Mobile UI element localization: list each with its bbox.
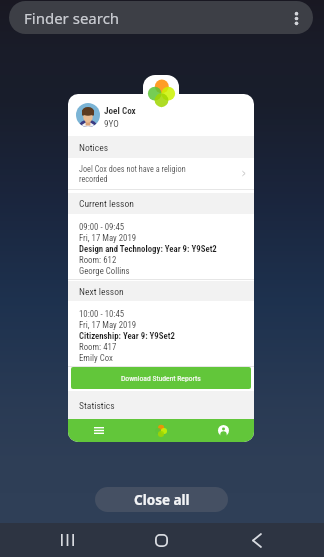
- staticText: 10:00 - 10:45: [79, 309, 125, 319]
- staticText: Next lesson: [79, 286, 124, 297]
- staticText: Joel Cox does not have a religion record…: [79, 164, 197, 184]
- button[interactable]: Home: [130, 419, 192, 442]
- staticText: Finder search: [24, 8, 120, 28]
- staticText: Room: 612: [79, 255, 117, 265]
- staticText: Close all: [134, 491, 190, 509]
- staticText: Download Student Reports: [121, 374, 201, 383]
- button[interactable]: Finder search: [9, 1, 313, 34]
- staticText: George Collins: [79, 266, 130, 276]
- staticText: Notices: [79, 142, 109, 153]
- button[interactable]: Recents: [20, 523, 114, 557]
- staticText: 9YO: [104, 118, 119, 129]
- staticText: Fri, 17 May 2019: [79, 320, 137, 330]
- button[interactable]: Close all: [95, 487, 228, 512]
- staticText: Fri, 17 May 2019: [79, 233, 137, 243]
- button[interactable]: Back: [209, 523, 304, 557]
- button[interactable]: Joel Cox does not have a religion record…: [68, 158, 254, 189]
- button[interactable]: Statistics: [68, 391, 254, 419]
- staticText: Design and Technology: Year 9: Y9Set2: [79, 244, 217, 254]
- staticText: Emily Cox: [79, 353, 113, 363]
- staticText: Statistics: [79, 400, 115, 411]
- button[interactable]: Joel Cox: [68, 94, 254, 442]
- button[interactable]: Home: [114, 523, 209, 557]
- staticText: 09:00 - 09:45: [79, 222, 125, 232]
- other: App icon: [143, 75, 179, 111]
- staticText: Citizenship: Year 9: Y9Set2: [79, 331, 175, 341]
- staticText: Current lesson: [79, 198, 134, 209]
- staticText: Joel Cox: [104, 105, 136, 116]
- button[interactable]: More options: [285, 7, 307, 29]
- button[interactable]: Menu: [68, 419, 130, 442]
- button[interactable]: Profile: [192, 419, 254, 442]
- staticText: Room: 417: [79, 342, 117, 352]
- button[interactable]: Download Student Reports: [71, 367, 251, 389]
